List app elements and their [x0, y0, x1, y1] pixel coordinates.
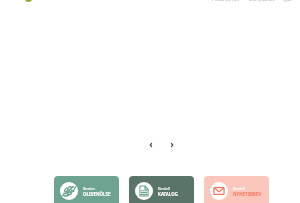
staticText: NYHETSBREV	[233, 191, 262, 197]
button[interactable]: Next slide	[166, 139, 178, 151]
staticText: PRODUKTER	[212, 0, 240, 2]
button[interactable]: KJØP	[283, 0, 294, 2]
staticText: Bestell	[158, 186, 171, 191]
button[interactable]: Bestes	[54, 176, 119, 203]
staticText: Bestes	[83, 186, 96, 191]
button[interactable]: Bestell	[204, 176, 269, 203]
button[interactable]: PRODUKTER	[212, 0, 240, 2]
button[interactable]: OM OLIVEN	[249, 0, 275, 2]
staticText: KJØP	[283, 0, 294, 2]
staticText: KATALOG	[158, 191, 178, 197]
button[interactable]: Bestell	[129, 176, 194, 203]
staticText: OM OLIVEN	[249, 0, 275, 2]
button[interactable]: Previous slide	[145, 139, 157, 151]
staticText: Bestell	[233, 186, 246, 191]
staticText: OLIVENÖLSE	[83, 191, 111, 197]
button[interactable]: Beste Oliven home	[24, 0, 82, 3]
